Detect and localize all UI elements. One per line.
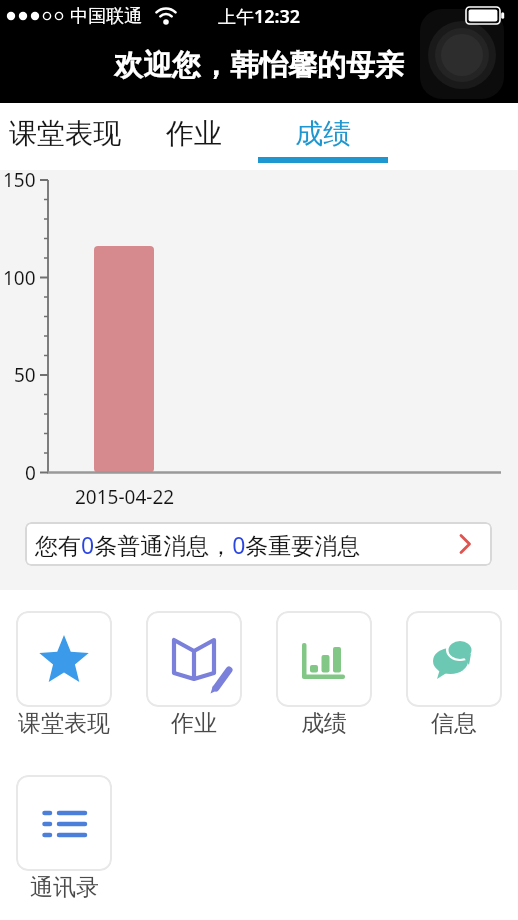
button[interactable] (16, 611, 112, 707)
staticText: 课堂表现 (9, 116, 121, 151)
staticText: 欢迎您，韩怡馨的母亲 (114, 47, 404, 84)
button[interactable]: 成绩 (258, 103, 388, 170)
button[interactable]: 作业 (129, 103, 258, 170)
staticText: 课堂表现 (18, 709, 110, 738)
staticText: 100 (3, 265, 36, 291)
button[interactable]: 课堂表现 (0, 103, 129, 170)
staticText: 上午12:32 (218, 4, 301, 29)
staticText: 作业 (171, 709, 217, 738)
staticText: 成绩 (295, 116, 351, 151)
staticText: 您有0条普通消息，0条重要消息 (35, 529, 361, 560)
button[interactable]: 您有0条普通消息，0条重要消息 (25, 522, 492, 566)
staticText: 作业 (166, 116, 222, 151)
staticText: 中国联通 (70, 5, 142, 28)
button[interactable] (16, 775, 112, 871)
button[interactable] (146, 611, 242, 707)
staticText: 150 (3, 167, 36, 193)
staticText: 成绩 (301, 709, 347, 738)
button[interactable] (420, 9, 504, 99)
staticText: 0 (25, 460, 36, 486)
button[interactable] (406, 611, 502, 707)
staticText: 2015-04-22 (75, 484, 175, 510)
staticText: 50 (14, 362, 36, 388)
staticText: 通讯录 (30, 873, 99, 902)
button[interactable] (276, 611, 372, 707)
staticText: 信息 (431, 709, 477, 738)
